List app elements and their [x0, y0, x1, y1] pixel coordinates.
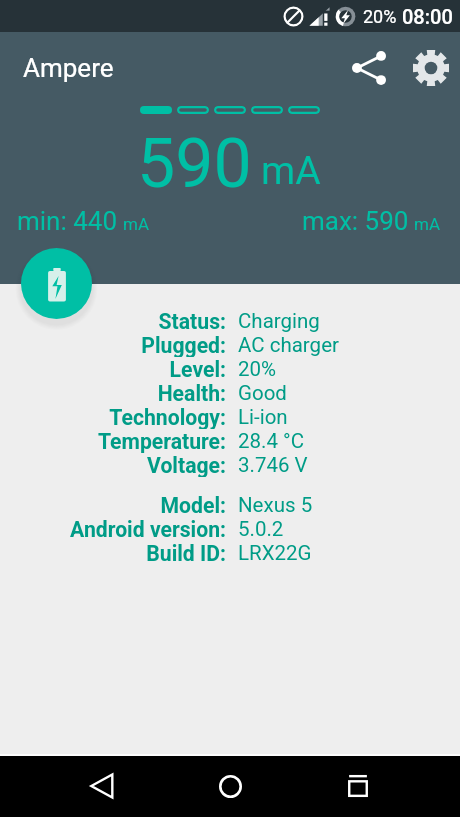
staticText: 20% — [363, 6, 397, 27]
button[interactable]: Home — [206, 762, 254, 810]
staticText: Ampere — [23, 53, 114, 83]
button[interactable]: Share — [346, 45, 392, 91]
staticText: 5.0.2 — [238, 517, 284, 541]
staticText: min: 440 — [17, 206, 118, 236]
staticText: Nexus 5 — [238, 493, 313, 517]
staticText: LRX22G — [238, 541, 312, 565]
staticText: Level: — [169, 357, 226, 381]
staticText: Plugged: — [141, 333, 226, 357]
button[interactable]: Measure — [21, 248, 92, 319]
staticText: Android version: — [70, 517, 226, 541]
staticText: Temperature: — [97, 429, 226, 453]
staticText: Health: — [157, 381, 226, 405]
staticText: max: 590 — [302, 206, 409, 236]
button[interactable]: Settings — [408, 45, 454, 91]
staticText: Status: — [158, 309, 226, 333]
staticText: 20% — [238, 357, 277, 381]
staticText: Li-ion — [238, 405, 288, 429]
staticText: mA — [123, 214, 149, 234]
staticText: Voltage: — [147, 453, 226, 477]
staticText: 3.746 V — [238, 453, 308, 477]
staticText: Technology: — [109, 405, 226, 429]
staticText: mA — [261, 148, 321, 194]
staticText: Good — [238, 381, 287, 405]
staticText: AC charger — [238, 333, 339, 357]
staticText: Build ID: — [146, 541, 226, 565]
staticText: Charging — [238, 309, 320, 333]
button[interactable]: Recents — [334, 762, 382, 810]
button[interactable]: Back — [78, 762, 126, 810]
staticText: 590 — [137, 124, 252, 204]
staticText: 08:00 — [402, 5, 453, 28]
staticText: mA — [414, 214, 440, 234]
staticText: 28.4 °C — [238, 429, 305, 453]
staticText: Model: — [160, 493, 226, 517]
